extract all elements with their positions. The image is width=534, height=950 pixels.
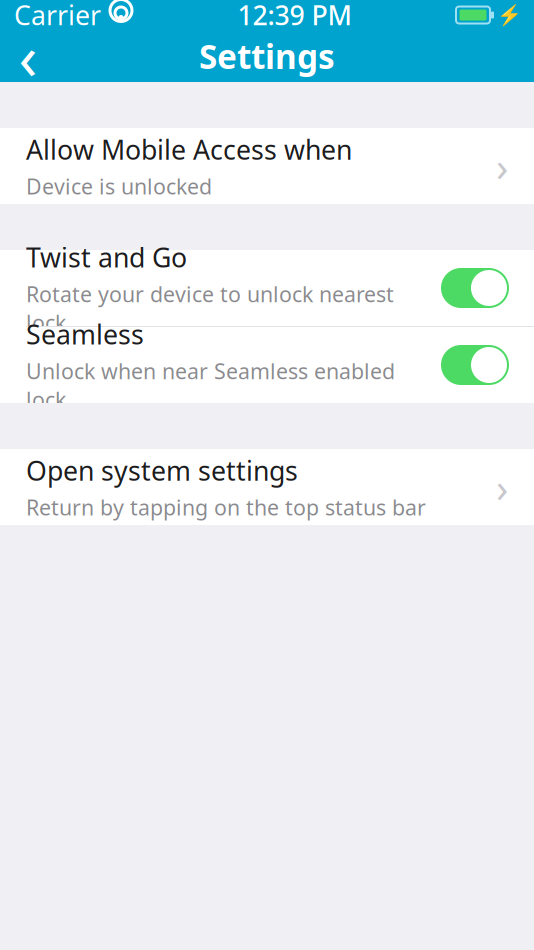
staticText: Unlock when near Seamless enabled lock	[26, 357, 395, 414]
staticText: Device is unlocked	[26, 172, 212, 200]
staticText: Allow Mobile Access when	[26, 132, 352, 167]
staticText: Twist and Go	[26, 239, 187, 275]
button[interactable]: Seamless	[0, 327, 534, 403]
staticText: Return by tapping on the top status bar	[26, 493, 426, 521]
button[interactable]: Allow Mobile Access when	[0, 128, 534, 204]
staticText: Seamless	[26, 316, 144, 352]
staticText: ›	[496, 139, 508, 192]
staticText: Rotate your device to unlock nearest loc…	[26, 280, 394, 337]
staticText: Carrier	[14, 0, 101, 33]
staticText: ⚡	[497, 4, 522, 26]
staticText: 12:39 PM	[237, 0, 351, 33]
button[interactable]: Open system settings	[0, 449, 534, 525]
staticText: ›	[496, 460, 508, 513]
staticText: Settings	[199, 34, 335, 78]
button[interactable]: Back	[0, 30, 56, 82]
staticText: ‹	[18, 15, 37, 97]
button[interactable]: Twist and Go	[0, 250, 534, 326]
staticText: Open system settings	[26, 453, 298, 488]
